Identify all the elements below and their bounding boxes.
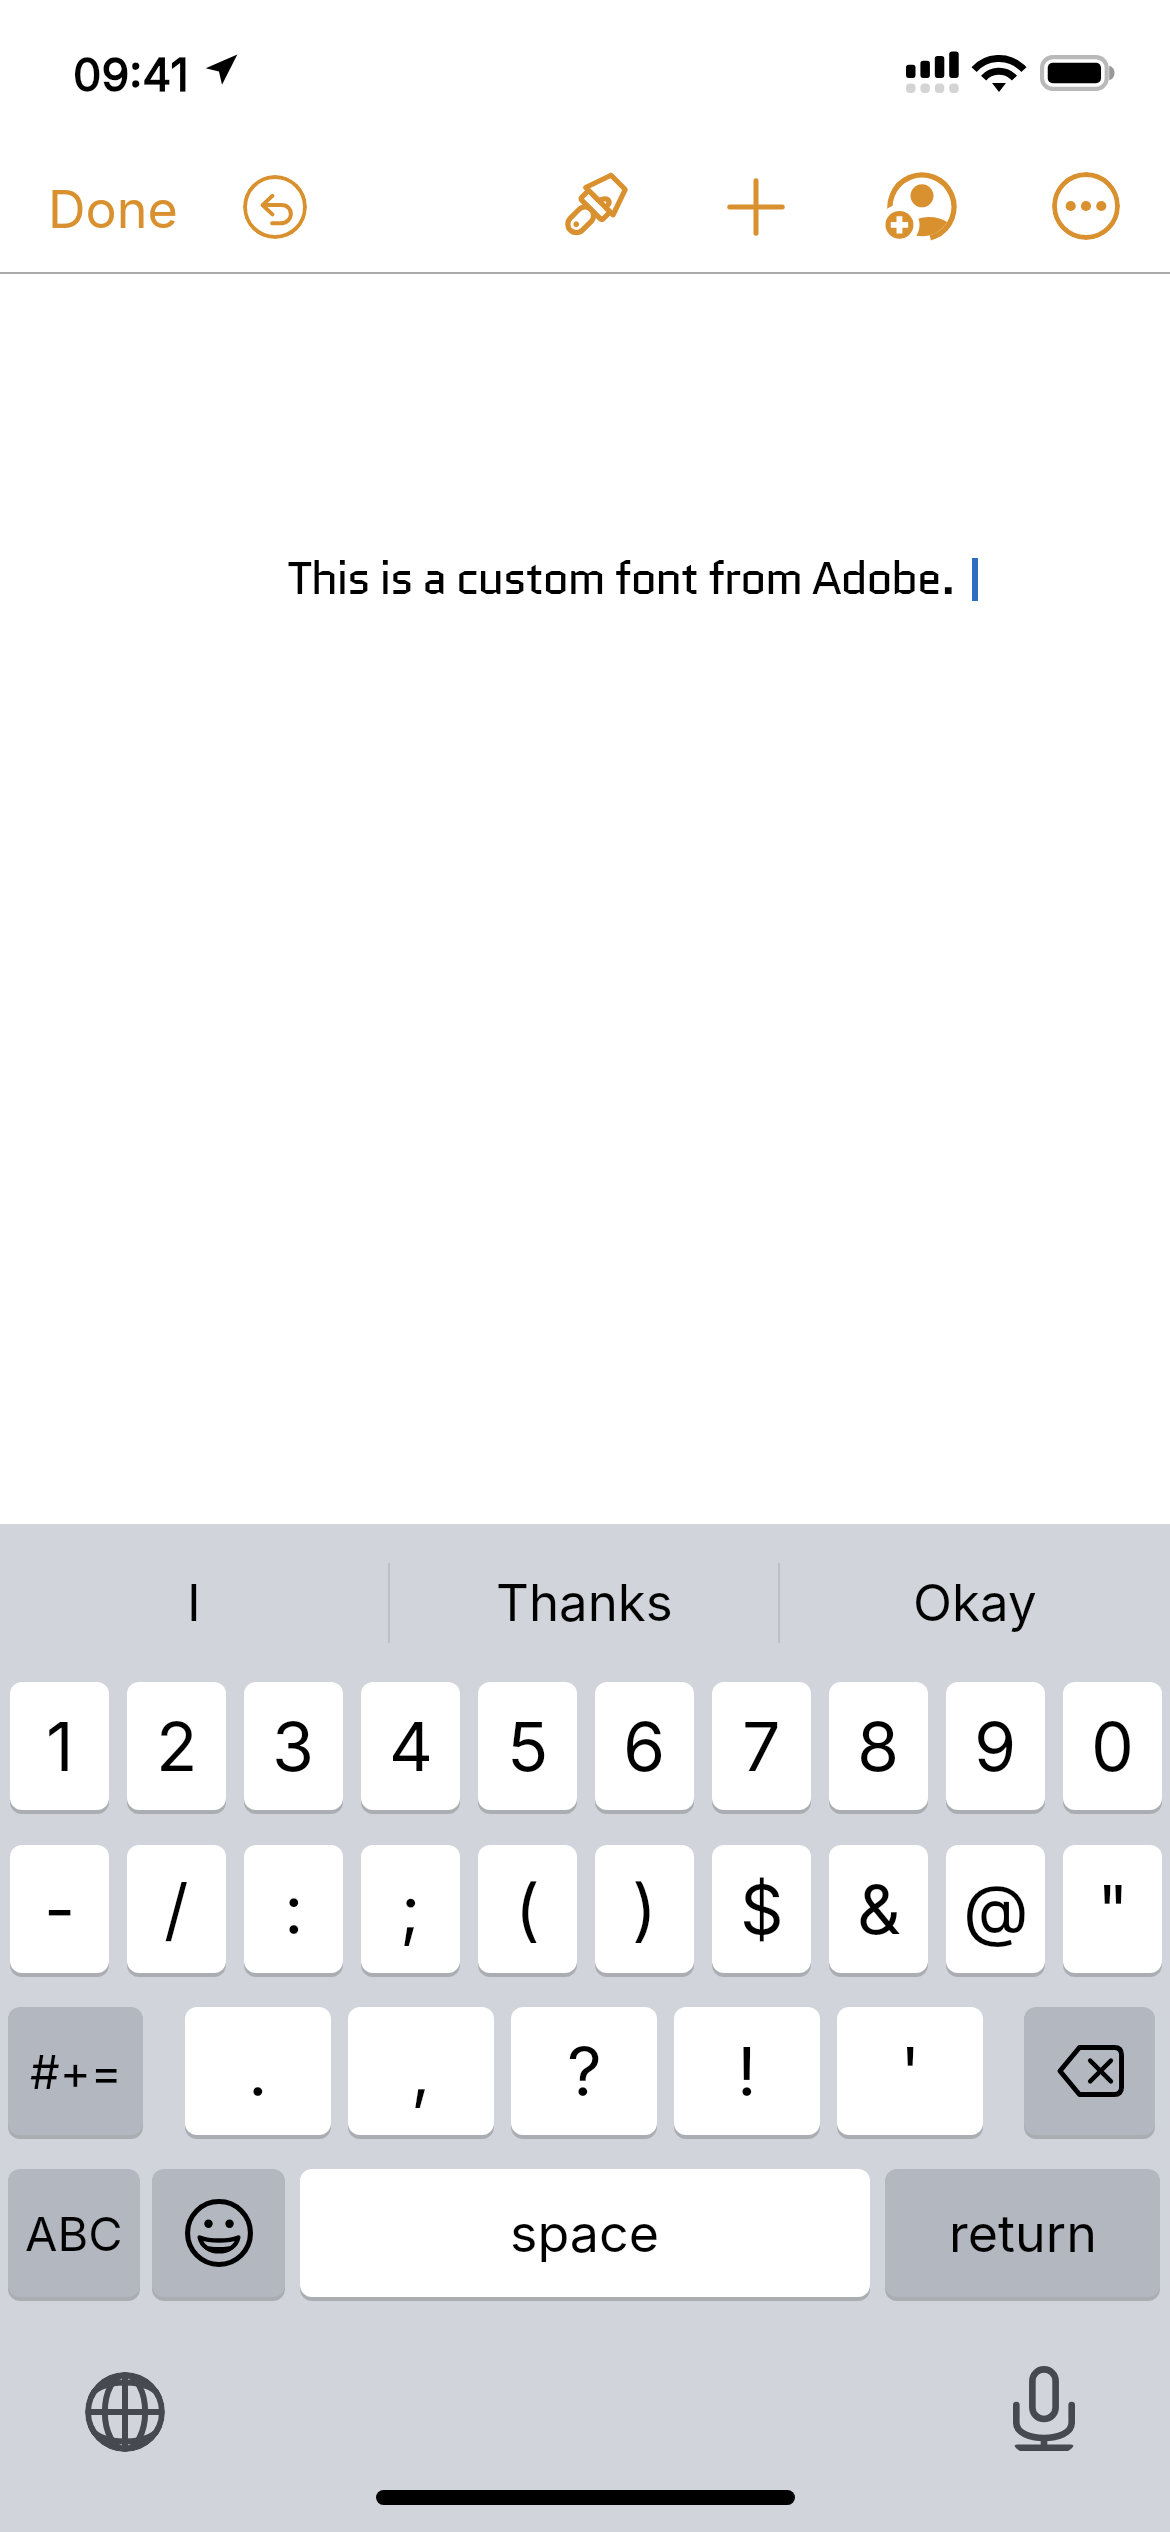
button[interactable]: . (185, 2007, 331, 2135)
staticText: , (411, 2030, 431, 2112)
button[interactable]: I (0, 1524, 388, 1682)
staticText: ? (567, 2030, 602, 2112)
staticText: ! (737, 2030, 757, 2112)
button[interactable]: 4 (361, 1682, 460, 1810)
staticText: Okay (913, 1572, 1037, 1634)
staticText: Thanks (496, 1572, 673, 1634)
button[interactable]: Add people (876, 160, 968, 252)
staticText: ( (515, 1868, 540, 1950)
button[interactable]: #+= (8, 2007, 143, 2135)
button[interactable]: 9 (946, 1682, 1045, 1810)
button[interactable]: Add (718, 169, 794, 245)
staticText: : (284, 1868, 304, 1950)
button[interactable]: ' (837, 2007, 983, 2135)
button[interactable]: 1 (10, 1682, 109, 1810)
button[interactable]: Thanks (390, 1524, 778, 1682)
button[interactable]: 0 (1063, 1682, 1162, 1810)
button[interactable]: ? (511, 2007, 657, 2135)
button[interactable]: ABC (8, 2169, 140, 2297)
button[interactable]: , (348, 2007, 494, 2135)
button[interactable]: ( (478, 1845, 577, 1973)
button[interactable]: More (1052, 172, 1120, 240)
button[interactable]: Dictate (1013, 2366, 1075, 2452)
button[interactable]: Change keyboard (85, 2372, 165, 2452)
staticText: ; (400, 1868, 421, 1950)
button[interactable]: & (829, 1845, 928, 1973)
button[interactable]: 8 (829, 1682, 928, 1810)
staticText: ) (632, 1868, 657, 1950)
staticText: 09:41 (73, 47, 189, 101)
button[interactable]: Undo (243, 175, 307, 239)
staticText: . (248, 2030, 268, 2112)
staticText: 9 (974, 1705, 1017, 1787)
button[interactable]: Okay (780, 1524, 1170, 1682)
staticText: 5 (507, 1705, 549, 1787)
button[interactable]: - (10, 1845, 109, 1973)
staticText: " (1097, 1868, 1129, 1950)
button[interactable]: ! (674, 2007, 820, 2135)
staticText: - (44, 1868, 76, 1950)
button[interactable]: 5 (478, 1682, 577, 1810)
staticText: ABC (25, 2205, 123, 2262)
button[interactable]: 7 (712, 1682, 811, 1810)
staticText: 3 (272, 1705, 315, 1787)
button[interactable]: @ (946, 1845, 1045, 1973)
button[interactable]: Markup (556, 168, 632, 244)
staticText: #+= (30, 2043, 122, 2100)
staticText: space (510, 2202, 660, 2265)
staticText: 2 (156, 1705, 198, 1787)
staticText: This is a custom font from Adobe. (287, 545, 955, 611)
button[interactable]: 3 (244, 1682, 343, 1810)
button[interactable]: Done (24, 166, 202, 253)
staticText: @ (963, 1868, 1029, 1950)
button[interactable]: ) (595, 1845, 694, 1973)
staticText: 6 (623, 1705, 666, 1787)
button[interactable]: Emoji (152, 2169, 285, 2297)
staticText: 1 (46, 1705, 74, 1787)
staticText: Done (48, 178, 178, 241)
button[interactable]: : (244, 1845, 343, 1973)
staticText: / (164, 1868, 189, 1950)
staticText: return (949, 2202, 1097, 2265)
button[interactable]: space (300, 2169, 870, 2297)
staticText: 0 (1091, 1705, 1134, 1787)
staticText: 8 (857, 1705, 900, 1787)
button[interactable]: $ (712, 1845, 811, 1973)
staticText: $ (740, 1868, 784, 1950)
button[interactable]: Backspace (1024, 2007, 1155, 2135)
button[interactable]: 2 (127, 1682, 226, 1810)
button[interactable]: 6 (595, 1682, 694, 1810)
button[interactable]: / (127, 1845, 226, 1973)
staticText: & (857, 1868, 901, 1950)
button[interactable]: " (1063, 1845, 1162, 1973)
button[interactable]: ; (361, 1845, 460, 1973)
staticText: 7 (742, 1705, 781, 1787)
button[interactable]: return (885, 2169, 1160, 2297)
staticText: 4 (389, 1705, 433, 1787)
staticText: ' (900, 2030, 921, 2112)
staticText: I (187, 1572, 201, 1634)
